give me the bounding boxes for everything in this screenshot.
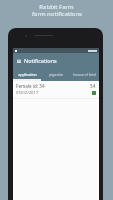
- button[interactable]: application: [13, 68, 41, 81]
- staticText: house of bird: [73, 72, 96, 77]
- staticText: application: [18, 72, 37, 77]
- button[interactable]: Open navigation menu: [16, 58, 21, 63]
- staticText: 05/02/2017: [16, 90, 39, 96]
- button[interactable]: house of bird: [70, 68, 99, 81]
- staticText: 54: [90, 83, 96, 89]
- staticText: Notifications: [24, 57, 57, 64]
- staticText: farm notifications: [32, 10, 82, 18]
- button[interactable]: pigeotin: [41, 68, 70, 81]
- staticText: Female id: 34: [16, 83, 45, 89]
- staticText: pigeotin: [49, 72, 63, 77]
- staticText: Rabbit Farm: [39, 3, 74, 11]
